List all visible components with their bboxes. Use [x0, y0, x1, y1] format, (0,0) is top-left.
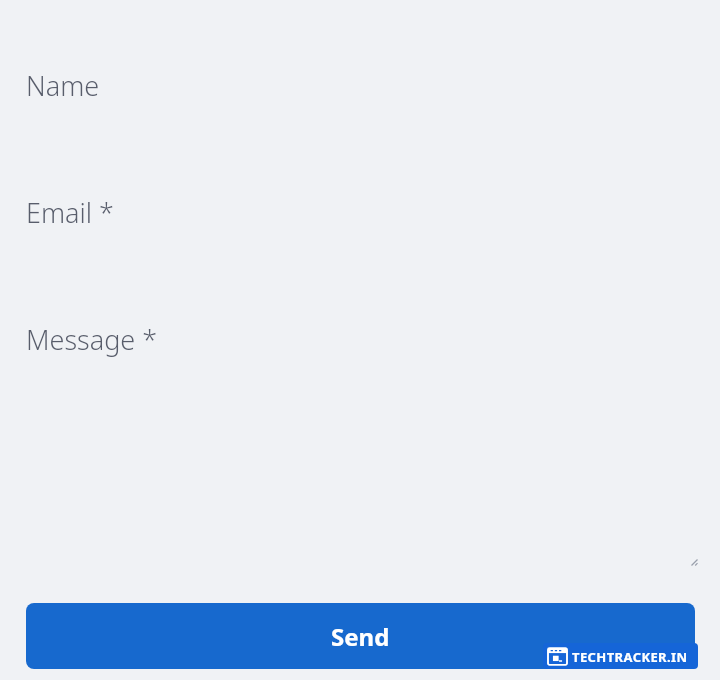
button[interactable]: Message * — [0, 314, 720, 568]
staticText: Email * — [26, 194, 114, 231]
staticText: TECHTRACKER.IN — [572, 648, 688, 666]
staticText: Send — [331, 620, 390, 653]
button[interactable]: Name — [0, 60, 720, 127]
staticText: Name — [26, 67, 100, 104]
button[interactable]: Send — [26, 603, 695, 669]
staticText: Message * — [26, 321, 158, 358]
button[interactable]: Email * — [0, 187, 720, 254]
